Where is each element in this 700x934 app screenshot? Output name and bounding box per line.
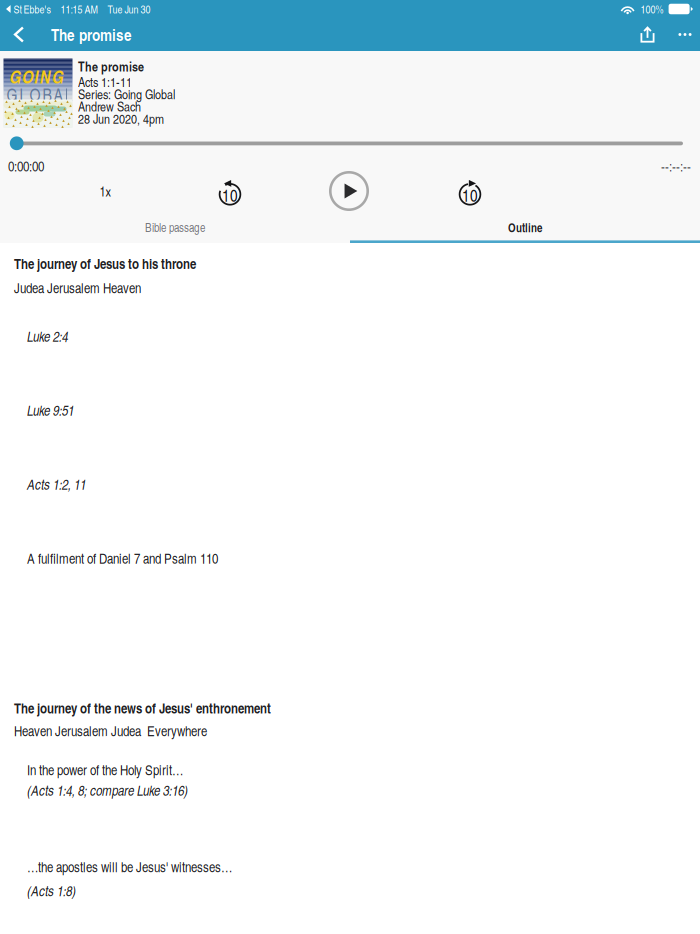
staticText: The promise: [78, 57, 144, 76]
button[interactable]: Back: [2, 18, 36, 51]
staticText: (Acts 1:4, 8; compare Luke 3:16): [27, 780, 188, 800]
staticText: B: [42, 82, 51, 106]
staticText: Tue Jun 30: [108, 1, 151, 16]
staticText: G: [6, 82, 17, 106]
staticText: Outline: [508, 219, 542, 236]
staticText: …the apostles will be Jesus' witnesses…: [27, 857, 232, 876]
staticText: 28 Jun 2020, 4pm: [78, 109, 164, 127]
staticText: L: [19, 82, 27, 106]
staticText: Bible passage: [145, 219, 205, 235]
button[interactable]: Playback speed 1x: [85, 177, 125, 205]
staticText: G: [52, 63, 63, 89]
button[interactable]: Share: [629, 18, 666, 51]
staticText: 0:00:00: [8, 156, 44, 175]
staticText: Series: Going Global: [78, 85, 175, 103]
staticText: Heaven Jerusalem Judea Everywhere: [14, 721, 207, 740]
button[interactable]: Outline: [350, 215, 700, 243]
staticText: 10: [462, 184, 478, 206]
staticText: Judea Jerusalem Heaven: [14, 278, 141, 297]
staticText: The promise: [51, 23, 132, 46]
staticText: 100%: [641, 1, 664, 16]
staticText: 1x: [99, 182, 110, 200]
staticText: In the power of the Holy Spirit…: [27, 760, 183, 779]
staticText: O: [22, 63, 33, 89]
staticText: Acts 1:1-11: [78, 72, 132, 91]
button[interactable]: More options: [666, 18, 700, 51]
staticText: A: [53, 82, 62, 106]
button[interactable]: Skip forward 10 seconds: [458, 180, 481, 206]
staticText: (Acts 1:8): [27, 881, 76, 900]
staticText: The journey of the news of Jesus' enthro…: [14, 698, 271, 718]
staticText: 11:15 AM: [61, 1, 98, 16]
staticText: A fulfilment of Daniel 7 and Psalm 110: [27, 548, 218, 568]
staticText: L: [64, 82, 72, 106]
staticText: I: [34, 63, 38, 89]
staticText: 10: [222, 184, 238, 206]
staticText: O: [29, 82, 40, 106]
button[interactable]: Skip back 10 seconds: [218, 180, 241, 206]
staticText: St Ebbe's: [14, 1, 51, 16]
staticText: Acts 1:2, 11: [27, 474, 86, 494]
staticText: --:--:--: [661, 156, 691, 175]
button[interactable]: Play: [329, 171, 369, 211]
staticText: The journey of Jesus to his throne: [14, 253, 196, 273]
button[interactable]: Bible passage: [0, 215, 350, 243]
staticText: G: [9, 63, 20, 89]
staticText: Luke 9:51: [27, 400, 74, 420]
staticText: Luke 2:4: [27, 326, 68, 346]
staticText: Andrew Sach: [78, 97, 141, 115]
staticText: N: [40, 63, 51, 89]
